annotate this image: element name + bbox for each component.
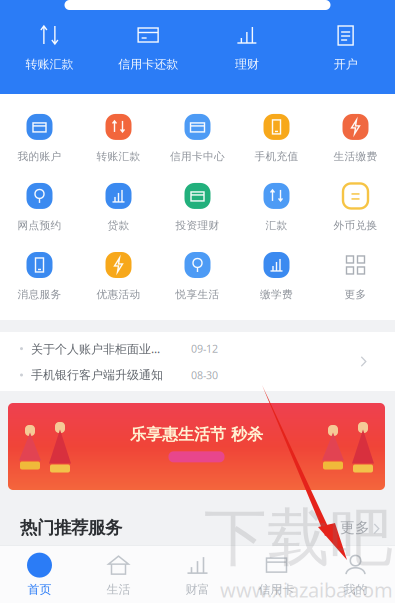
button[interactable]: 投资理财 <box>158 182 237 232</box>
staticText: 财富 <box>185 582 209 597</box>
button[interactable]: 外币兑换 <box>316 182 395 232</box>
staticText: 手机充值 <box>254 150 298 163</box>
staticText: 网点预约 <box>17 219 61 232</box>
button[interactable]: 搜索 <box>64 0 330 10</box>
button[interactable]: 财富 <box>158 552 237 597</box>
staticText: 更多 <box>340 519 370 537</box>
staticText: 生活 <box>106 582 130 597</box>
staticText: 转账汇款 <box>25 57 73 72</box>
button[interactable]: 转账汇款 <box>0 23 99 72</box>
staticText: 更多 <box>344 288 366 301</box>
staticText: 转账汇款 <box>96 150 140 163</box>
button[interactable]: 我的 <box>316 552 395 597</box>
staticText: 外币兑换 <box>333 219 377 232</box>
button[interactable]: 我的账户 <box>0 113 79 163</box>
button[interactable]: 开户 <box>296 23 395 72</box>
button[interactable]: 贷款 <box>79 182 158 232</box>
button[interactable]: 悦享生活 <box>158 251 237 301</box>
button[interactable]: 关于个人账户非柜面业务公告 <box>0 332 395 391</box>
button[interactable]: 网点预约 <box>0 182 79 232</box>
staticText: 汇款 <box>265 219 287 232</box>
staticText: 热门推荐服务 <box>20 517 122 538</box>
button[interactable]: 优惠活动 <box>79 251 158 301</box>
button[interactable]: 理财 <box>197 23 296 72</box>
button[interactable]: 首页 <box>0 552 79 597</box>
button[interactable]: 消息服务 <box>0 251 79 301</box>
button[interactable]: 乐享惠生活节 秒杀 <box>8 403 385 490</box>
staticText: www.xiazaiba.com <box>220 576 393 603</box>
button[interactable]: 信用卡还款 <box>99 23 198 72</box>
staticText: 信用卡中心 <box>170 150 225 163</box>
staticText: 消息服务 <box>17 288 61 301</box>
staticText: 08-30 <box>191 368 218 382</box>
button[interactable]: 生活 <box>79 552 158 597</box>
staticText: 投资理财 <box>175 219 219 232</box>
staticText: 我的账户 <box>17 150 61 163</box>
button[interactable]: 信用卡中心 <box>158 113 237 163</box>
staticText: 09-12 <box>191 341 218 356</box>
button[interactable]: 汇款 <box>237 182 316 232</box>
staticText: 悦享生活 <box>175 288 219 301</box>
staticText: 信用卡 <box>258 582 294 597</box>
staticText: 手机银行客户端升级通知 <box>31 368 163 382</box>
button[interactable]: 转账汇款 <box>79 113 158 163</box>
staticText: 优惠活动 <box>96 288 140 301</box>
staticText: 乐享惠生活节 秒杀 <box>130 425 263 444</box>
staticText: 首页 <box>27 582 51 597</box>
button[interactable]: 生活缴费 <box>316 113 395 163</box>
button[interactable]: 信用卡 <box>237 552 316 597</box>
staticText: 关于个人账户非柜面业务公告 <box>31 341 169 357</box>
button[interactable]: 缴学费 <box>237 251 316 301</box>
button[interactable]: 手机充值 <box>237 113 316 163</box>
staticText: 我的 <box>343 582 367 597</box>
staticText: 下载吧 <box>204 499 393 576</box>
staticText: 缴学费 <box>260 288 293 301</box>
button[interactable]: 更多 <box>316 251 395 301</box>
staticText: 信用卡还款 <box>118 57 178 72</box>
button[interactable]: 更多 <box>340 519 379 537</box>
staticText: 开户 <box>334 57 358 72</box>
staticText: 生活缴费 <box>333 150 377 163</box>
staticText: 理财 <box>235 57 259 72</box>
staticText: 贷款 <box>107 219 129 232</box>
